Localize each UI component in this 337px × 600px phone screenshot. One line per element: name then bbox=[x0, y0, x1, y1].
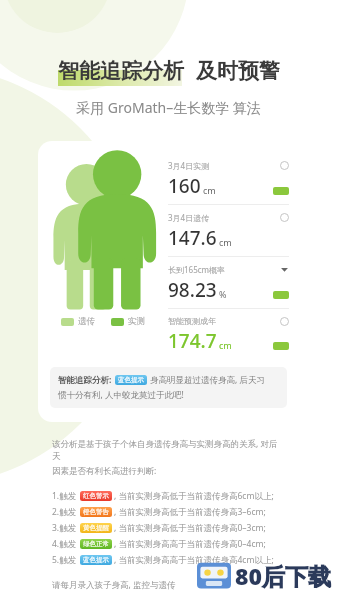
button[interactable]: 1.触发 bbox=[52, 488, 285, 504]
staticText: , 当前实测身高高于当前遗传身高4cm以上; bbox=[114, 554, 274, 566]
staticText: 采用 GroMath–生长数学 算法 bbox=[0, 98, 337, 117]
button[interactable]: 5.触发 bbox=[52, 552, 285, 568]
staticText: , 当前实测身高低于当前遗传身高6cm以上; bbox=[114, 490, 274, 502]
staticText: 绿色正常 bbox=[83, 540, 109, 548]
staticText: 身高明显超过遗传身高, 后天习 bbox=[150, 374, 265, 386]
button[interactable]: 黄色提醒 bbox=[80, 523, 112, 533]
staticText: 遗传 bbox=[78, 316, 95, 327]
staticText: 橙色警告 bbox=[83, 508, 109, 516]
staticText: 160 bbox=[168, 173, 201, 199]
button[interactable]: 橙色警告 bbox=[80, 507, 112, 517]
button[interactable]: 长到165cm概率 bbox=[168, 257, 289, 306]
staticText: 红色警示 bbox=[83, 492, 109, 500]
staticText: 智能预测成年 bbox=[168, 316, 280, 326]
staticText: 2.触发 bbox=[52, 506, 77, 518]
staticText: 3月4日遗传 bbox=[168, 212, 280, 223]
button[interactable]: 3.触发 bbox=[52, 520, 285, 536]
staticText: 惯十分有利, 人中蛟龙莫过于此吧! bbox=[58, 389, 184, 401]
staticText: 147.6 bbox=[168, 225, 217, 251]
staticText: 及时预警 bbox=[196, 58, 280, 84]
button[interactable]: 实测 bbox=[111, 316, 145, 327]
staticText: cm bbox=[203, 184, 216, 196]
staticText: cm bbox=[219, 236, 232, 248]
staticText: 98.23 bbox=[168, 277, 217, 303]
other: 信息 bbox=[280, 161, 289, 170]
staticText: cm bbox=[219, 339, 232, 351]
staticText: 174.7 bbox=[168, 328, 217, 354]
button[interactable] bbox=[273, 342, 289, 350]
staticText: 智能追踪分析: bbox=[58, 374, 112, 386]
staticText: 该分析是基于孩子个体自身遗传身高与实测身高的关系, 对后天 bbox=[52, 438, 285, 461]
staticText: 黄色提醒 bbox=[83, 524, 109, 532]
button[interactable]: 3月4日实测 bbox=[168, 153, 289, 202]
staticText: 1.触发 bbox=[52, 490, 77, 502]
staticText: 3月4日实测 bbox=[168, 160, 280, 171]
staticText: 蓝色提示 bbox=[118, 376, 144, 384]
staticText: 请每月录入孩子身高, 监控与遗传 bbox=[52, 579, 176, 591]
other: 信息 bbox=[280, 317, 289, 326]
button[interactable]: 智能预测成年 bbox=[168, 309, 289, 357]
staticText: 因素是否有利长高进行判断: bbox=[52, 465, 157, 477]
button[interactable]: 2.触发 bbox=[52, 504, 285, 520]
staticText: 80后下载 bbox=[235, 560, 331, 591]
button[interactable]: 蓝色提示 bbox=[115, 375, 147, 385]
button[interactable]: 绿色正常 bbox=[80, 539, 112, 549]
staticText: , 当前实测身高低于当前遗传身高3–6cm; bbox=[114, 506, 266, 518]
button[interactable]: 遗传 bbox=[38, 141, 299, 422]
button[interactable]: 红色警示 bbox=[80, 491, 112, 501]
staticText: 蓝色提示 bbox=[83, 556, 109, 564]
staticText: 4.触发 bbox=[52, 538, 77, 550]
button[interactable]: 蓝色提示 bbox=[80, 555, 112, 565]
button[interactable]: 3月4日遗传 bbox=[168, 205, 289, 254]
staticText: 3.触发 bbox=[52, 522, 77, 534]
staticText: 智能追踪分析 bbox=[58, 58, 184, 84]
button[interactable] bbox=[273, 187, 289, 195]
button[interactable]: 遗传 bbox=[61, 316, 95, 327]
staticText: , 当前实测身高低于当前遗传身高0–3cm; bbox=[114, 522, 266, 534]
staticText: % bbox=[219, 288, 227, 300]
other: 展开 bbox=[280, 265, 289, 274]
staticText: 5.触发 bbox=[52, 554, 77, 566]
staticText: 长到165cm概率 bbox=[168, 264, 280, 275]
button[interactable] bbox=[273, 291, 289, 299]
button[interactable]: 4.触发 bbox=[52, 536, 285, 552]
staticText: , 当前实测身高高于当前遗传身高0–4cm; bbox=[114, 538, 266, 550]
other: 信息 bbox=[280, 213, 289, 222]
staticText: 实测 bbox=[128, 316, 145, 327]
button[interactable]: 智能追踪分析: bbox=[50, 367, 287, 408]
